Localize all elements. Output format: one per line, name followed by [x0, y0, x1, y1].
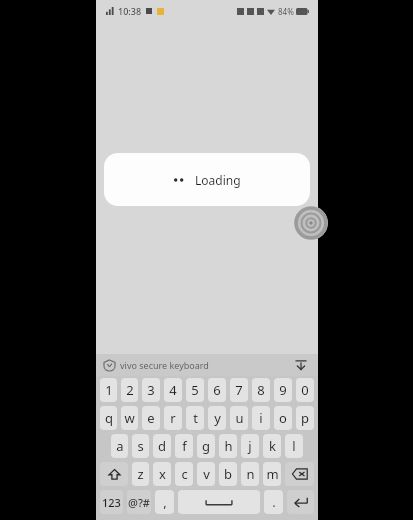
staticText: h — [224, 437, 233, 455]
staticText: s — [137, 437, 144, 455]
button[interactable]: Backspace — [285, 462, 314, 486]
staticText: m — [266, 465, 279, 483]
button[interactable]: w — [121, 406, 138, 430]
button[interactable]: a — [111, 434, 128, 458]
staticText: 7 — [235, 381, 243, 399]
button[interactable]: 5 — [186, 378, 204, 402]
staticText: b — [224, 465, 232, 483]
staticText: a — [116, 437, 124, 455]
staticText: 84% — [278, 6, 294, 17]
staticText: 9 — [279, 381, 287, 399]
staticText: u — [235, 409, 244, 427]
staticText: 0 — [301, 381, 309, 399]
staticText: 1 — [105, 381, 113, 399]
staticText: g — [202, 437, 210, 455]
staticText: 5 — [191, 381, 199, 399]
button[interactable]: i — [252, 406, 270, 430]
button[interactable]: m — [263, 462, 281, 486]
button[interactable]: 3 — [142, 378, 160, 402]
staticText: 3 — [147, 381, 155, 399]
button[interactable]: k — [263, 434, 281, 458]
button[interactable]: 1 — [100, 378, 117, 402]
button[interactable]: j — [241, 434, 259, 458]
button[interactable]: c — [175, 462, 193, 486]
button[interactable]: 4 — [164, 378, 182, 402]
staticText: vivo secure keyboard — [120, 359, 209, 371]
staticText: d — [158, 437, 166, 455]
button[interactable]: 9 — [274, 378, 292, 402]
button[interactable]: o — [274, 406, 292, 430]
staticText: o — [279, 409, 287, 427]
button[interactable]: l — [285, 434, 303, 458]
button[interactable]: h — [219, 434, 237, 458]
staticText: r — [170, 409, 176, 427]
staticText: y — [214, 409, 221, 427]
staticText: x — [159, 465, 166, 483]
staticText: 4 — [169, 381, 177, 399]
button[interactable]: n — [241, 462, 259, 486]
button[interactable]: u — [230, 406, 248, 430]
button[interactable]: . — [264, 490, 283, 514]
button[interactable]: 123 — [100, 490, 123, 514]
button[interactable]: p — [296, 406, 314, 430]
button[interactable]: s — [132, 434, 149, 458]
staticText: 6 — [213, 381, 221, 399]
staticText: z — [137, 465, 144, 483]
staticText: n — [246, 465, 255, 483]
staticText: , — [163, 493, 167, 511]
button[interactable]: y — [208, 406, 226, 430]
staticText: q — [105, 409, 113, 427]
staticText: p — [301, 409, 309, 427]
staticText: . — [272, 493, 276, 511]
staticText: f — [182, 437, 187, 455]
button[interactable]: @?# — [127, 490, 151, 514]
button[interactable]: 7 — [230, 378, 248, 402]
button[interactable]: f — [175, 434, 193, 458]
staticText: 123 — [102, 495, 121, 510]
button[interactable]: q — [100, 406, 117, 430]
button[interactable]: e — [142, 406, 160, 430]
staticText: 10:38 — [118, 5, 142, 17]
button[interactable]: Hide keyboard — [292, 356, 310, 374]
staticText: c — [181, 465, 188, 483]
button[interactable]: 6 — [208, 378, 226, 402]
button[interactable]: z — [132, 462, 149, 486]
button[interactable]: Floating assistant — [294, 206, 328, 240]
staticText: e — [147, 409, 155, 427]
button[interactable]: Shift — [100, 462, 128, 486]
button[interactable]: r — [164, 406, 182, 430]
staticText: i — [259, 409, 263, 427]
button[interactable]: , — [155, 490, 174, 514]
staticText: Loading — [195, 172, 241, 188]
button[interactable]: Enter — [287, 490, 314, 514]
button[interactable]: Loading — [104, 153, 310, 206]
staticText: t — [193, 409, 198, 427]
button[interactable]: v — [197, 462, 215, 486]
button[interactable]: Space — [178, 490, 260, 514]
button[interactable]: 0 — [296, 378, 314, 402]
staticText: @?# — [128, 495, 150, 510]
staticText: k — [269, 437, 276, 455]
button[interactable]: 2 — [121, 378, 138, 402]
button[interactable]: g — [197, 434, 215, 458]
staticText: v — [203, 465, 210, 483]
staticText: j — [248, 437, 252, 455]
staticText: 8 — [257, 381, 265, 399]
staticText: l — [292, 437, 296, 455]
staticText: 2 — [126, 381, 134, 399]
staticText: w — [124, 409, 135, 427]
button[interactable]: t — [186, 406, 204, 430]
button[interactable]: b — [219, 462, 237, 486]
button[interactable]: d — [153, 434, 171, 458]
button[interactable]: x — [153, 462, 171, 486]
button[interactable]: 8 — [252, 378, 270, 402]
